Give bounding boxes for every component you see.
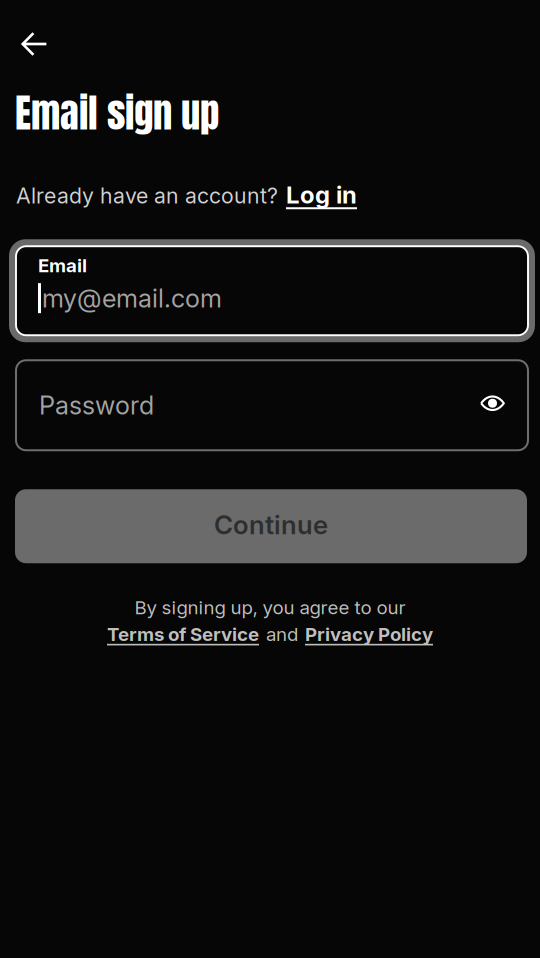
button[interactable]: Log in bbox=[286, 180, 357, 209]
staticText: and bbox=[266, 623, 298, 645]
button[interactable]: Privacy Policy bbox=[305, 623, 433, 645]
staticText: Email bbox=[38, 254, 87, 277]
button[interactable]: Show password bbox=[480, 394, 505, 412]
staticText: my@email.com bbox=[42, 283, 222, 313]
staticText: Privacy Policy bbox=[305, 623, 433, 645]
staticText: By signing up, you agree to our bbox=[134, 596, 405, 619]
staticText: Log in bbox=[286, 180, 357, 209]
button[interactable]: Back bbox=[0, 0, 62, 67]
button[interactable]: Terms of Service bbox=[107, 623, 259, 645]
staticText: Already have an account? bbox=[16, 183, 278, 209]
button[interactable]: Continue bbox=[15, 489, 527, 563]
staticText: Password bbox=[39, 390, 154, 421]
staticText: Email sign up bbox=[15, 84, 219, 142]
staticText: Terms of Service bbox=[107, 623, 259, 645]
staticText: Continue bbox=[214, 509, 328, 540]
